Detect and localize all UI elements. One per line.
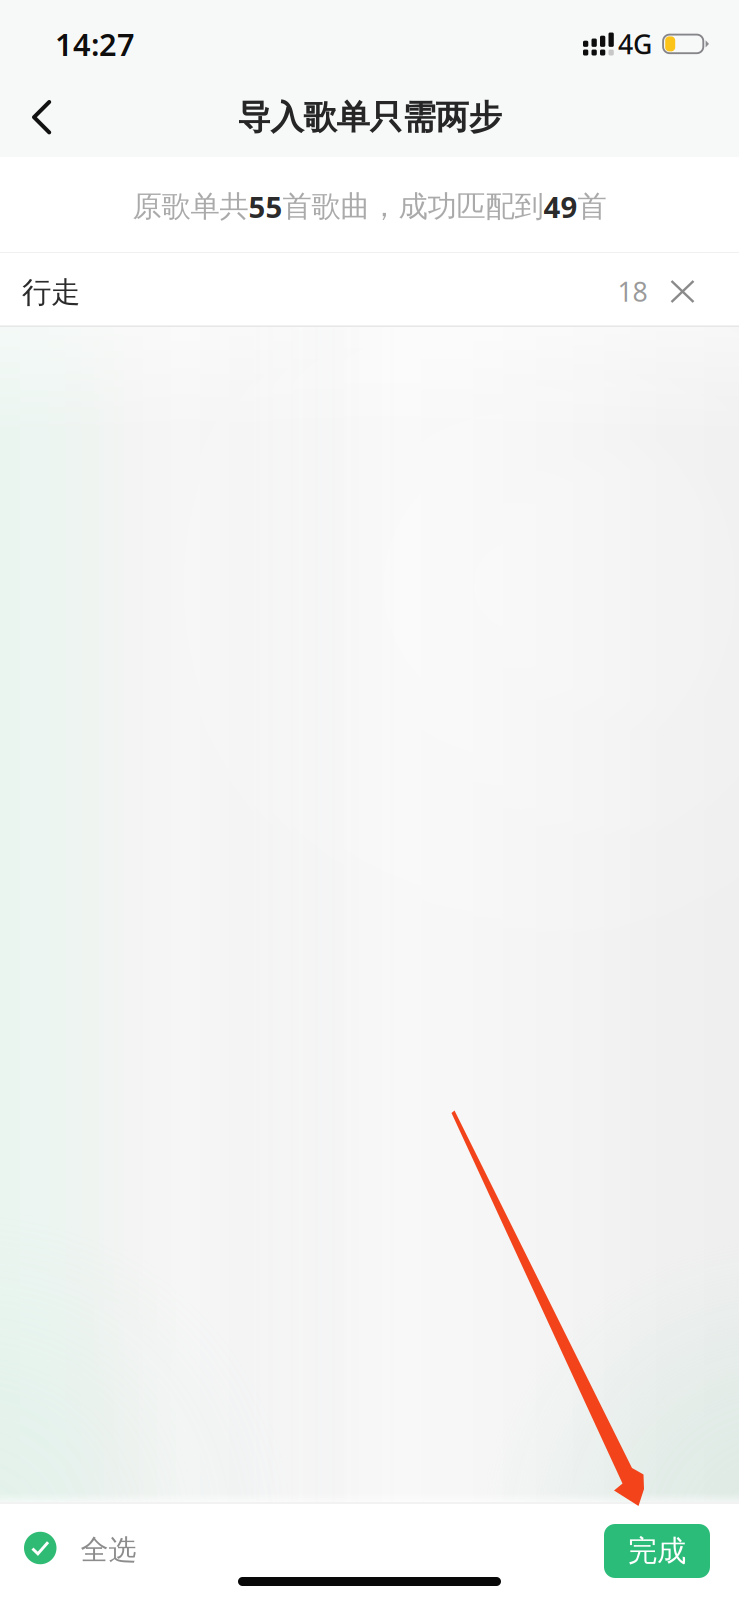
- staticText: 首: [577, 188, 606, 224]
- button[interactable]: 全选: [0, 1520, 154, 1576]
- staticText: 导入歌单只需两步: [237, 97, 501, 138]
- button[interactable]: 返回: [10, 85, 74, 149]
- staticText: 原歌单共: [132, 188, 248, 224]
- staticText: 首歌曲，成功匹配到: [282, 188, 543, 224]
- staticText: 18: [617, 274, 647, 309]
- staticText: 完成: [628, 1533, 686, 1569]
- staticText: 行走: [22, 274, 80, 310]
- button[interactable]: 完成: [604, 1524, 710, 1578]
- staticText: 49: [543, 187, 577, 226]
- staticText: 14:27: [55, 24, 135, 64]
- button[interactable]: 行走: [0, 252, 739, 327]
- staticText: 4G: [618, 26, 652, 62]
- staticText: 全选: [80, 1533, 136, 1567]
- staticText: 55: [248, 187, 282, 226]
